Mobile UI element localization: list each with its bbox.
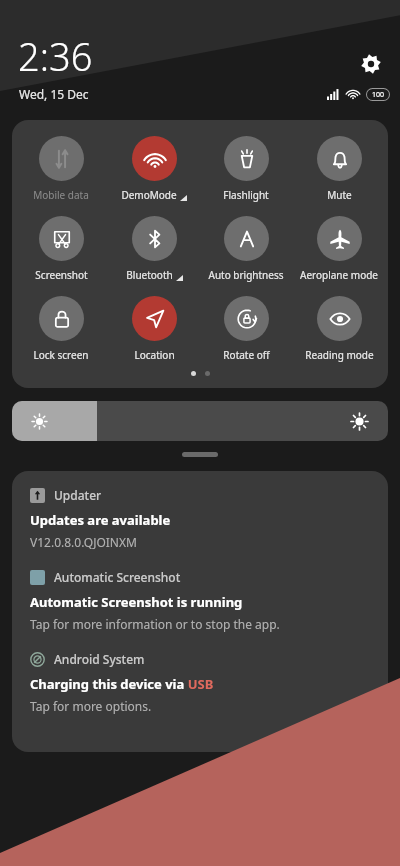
staticText: Auto brightness bbox=[208, 268, 284, 282]
staticText: Lock screen bbox=[33, 348, 89, 362]
button[interactable]: Mobile data bbox=[17, 136, 105, 202]
button[interactable]: Bluetooth bbox=[110, 216, 198, 282]
staticText: Android System bbox=[54, 651, 145, 667]
staticText: Mute bbox=[327, 188, 352, 202]
button[interactable] bbox=[12, 401, 388, 441]
staticText: Tap for more information or to stop the … bbox=[30, 616, 280, 632]
staticText: 100 bbox=[372, 90, 385, 100]
button[interactable]: Settings bbox=[357, 50, 385, 78]
staticText: Wed, 15 Dec bbox=[19, 86, 89, 102]
button[interactable]: Automatic Screenshot bbox=[30, 569, 370, 632]
button[interactable]: Updater bbox=[30, 487, 370, 550]
staticText: 2:36 bbox=[18, 30, 93, 82]
staticText: Bluetooth bbox=[126, 268, 173, 282]
staticText: Screenshot bbox=[35, 268, 88, 282]
button[interactable]: Flashlight bbox=[202, 136, 290, 202]
button[interactable]: Mute bbox=[295, 136, 383, 202]
button[interactable]: Auto brightness bbox=[202, 216, 290, 282]
staticText: Reading mode bbox=[305, 348, 374, 362]
button[interactable]: Aeroplane mode bbox=[295, 216, 383, 282]
button[interactable]: Rotate off bbox=[202, 296, 290, 362]
staticText: Charging this device via USB bbox=[30, 675, 214, 693]
button[interactable]: DemoMode bbox=[110, 136, 198, 202]
staticText: Flashlight bbox=[223, 188, 269, 202]
staticText: Rotate off bbox=[223, 348, 270, 362]
staticText: Updates are available bbox=[30, 511, 171, 529]
staticText: Automatic Screenshot is running bbox=[30, 593, 243, 611]
staticText: V12.0.8.0.QJOINXM bbox=[30, 534, 137, 550]
staticText: Tap for more options. bbox=[30, 698, 152, 714]
staticText: Location bbox=[134, 348, 175, 362]
button[interactable]: Reading mode bbox=[295, 296, 383, 362]
staticText: Aeroplane mode bbox=[300, 268, 378, 282]
staticText: Updater bbox=[54, 487, 102, 503]
button[interactable]: Screenshot bbox=[17, 216, 105, 282]
staticText: Automatic Screenshot bbox=[54, 569, 181, 585]
staticText: DemoMode bbox=[121, 188, 177, 202]
button[interactable]: Lock screen bbox=[17, 296, 105, 362]
button[interactable]: Location bbox=[110, 296, 198, 362]
button[interactable]: Android System bbox=[30, 651, 370, 714]
staticText: Mobile data bbox=[33, 188, 89, 202]
